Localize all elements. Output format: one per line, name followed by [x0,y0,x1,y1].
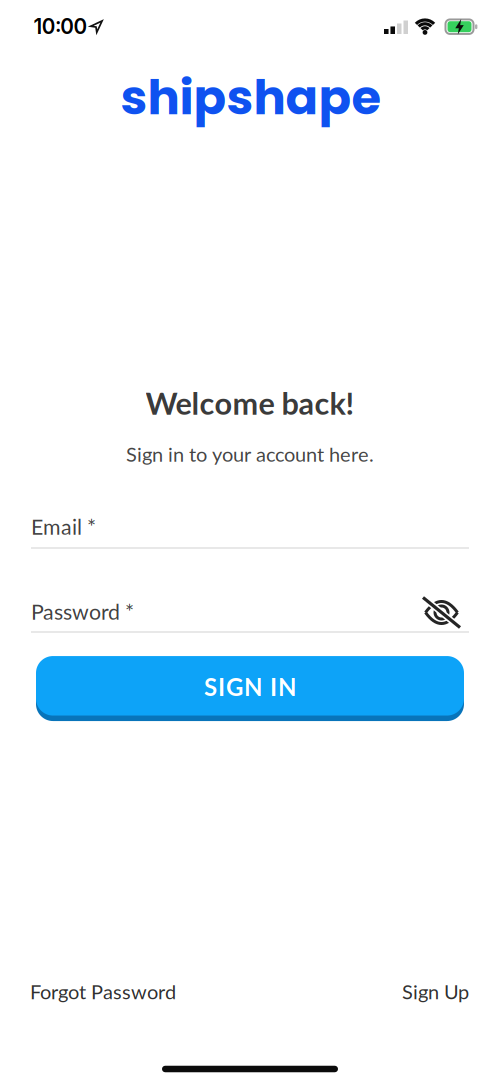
staticText: SIGN IN [204,672,296,701]
button[interactable]: SIGN IN [36,653,464,718]
staticText: Forgot Password [30,979,176,1003]
staticText: shipshape [120,64,381,131]
button[interactable]: Forgot Password [30,979,176,1003]
staticText: Email * [31,514,96,539]
staticText: 10:00 [33,14,88,39]
staticText: Sign in to your account here. [126,442,374,466]
staticText: Welcome back! [145,385,354,421]
staticText: Password * [31,599,134,624]
staticText: Sign Up [402,979,469,1003]
button[interactable]: Sign Up [402,979,469,1003]
button[interactable]: Show password [419,592,463,632]
